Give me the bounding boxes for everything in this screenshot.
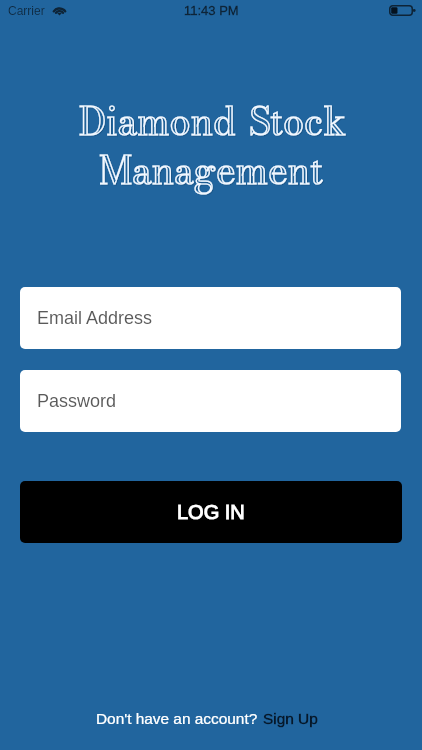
button[interactable]: Password — [20, 370, 401, 432]
other: Wi-Fi signal — [52, 5, 67, 16]
staticText: Carrier — [8, 4, 45, 17]
staticText: Management — [100, 143, 324, 200]
staticText: Don't have an account? — [96, 710, 258, 727]
staticText: Management — [99, 142, 323, 199]
staticText: Password — [37, 391, 117, 411]
staticText: Email Address — [37, 308, 153, 328]
staticText: Diamond — [80, 94, 237, 151]
other: Battery — [389, 5, 416, 16]
staticText: Sign Up — [263, 710, 318, 727]
staticText: 11:43 PM — [184, 3, 239, 18]
button[interactable]: LOG IN — [20, 481, 402, 543]
staticText: Stock — [249, 93, 346, 150]
staticText: Diamond — [79, 93, 236, 150]
staticText: LOG IN — [177, 501, 245, 523]
staticText: Stock — [250, 94, 347, 151]
button[interactable]: Sign Up — [263, 710, 318, 727]
button[interactable]: Email Address — [20, 287, 401, 349]
